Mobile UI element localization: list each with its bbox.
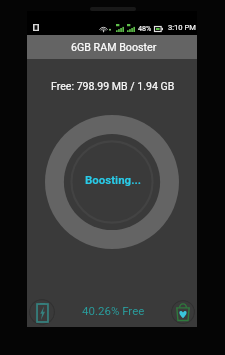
button[interactable]: Boosting... xyxy=(73,143,151,221)
staticText: 6GB RAM Booster xyxy=(71,41,157,54)
staticText: Free: 798.99 MB / 1.94 GB xyxy=(51,80,175,92)
staticText: 3:10 PM xyxy=(168,23,196,32)
staticText: Boosting... xyxy=(85,173,142,186)
staticText: 40.26% Free xyxy=(82,304,145,317)
staticText: 48% xyxy=(138,24,152,32)
button[interactable]: More apps xyxy=(171,300,195,324)
button[interactable]: 6GB RAM Booster xyxy=(27,35,197,59)
button[interactable]: Battery saver xyxy=(29,299,55,325)
